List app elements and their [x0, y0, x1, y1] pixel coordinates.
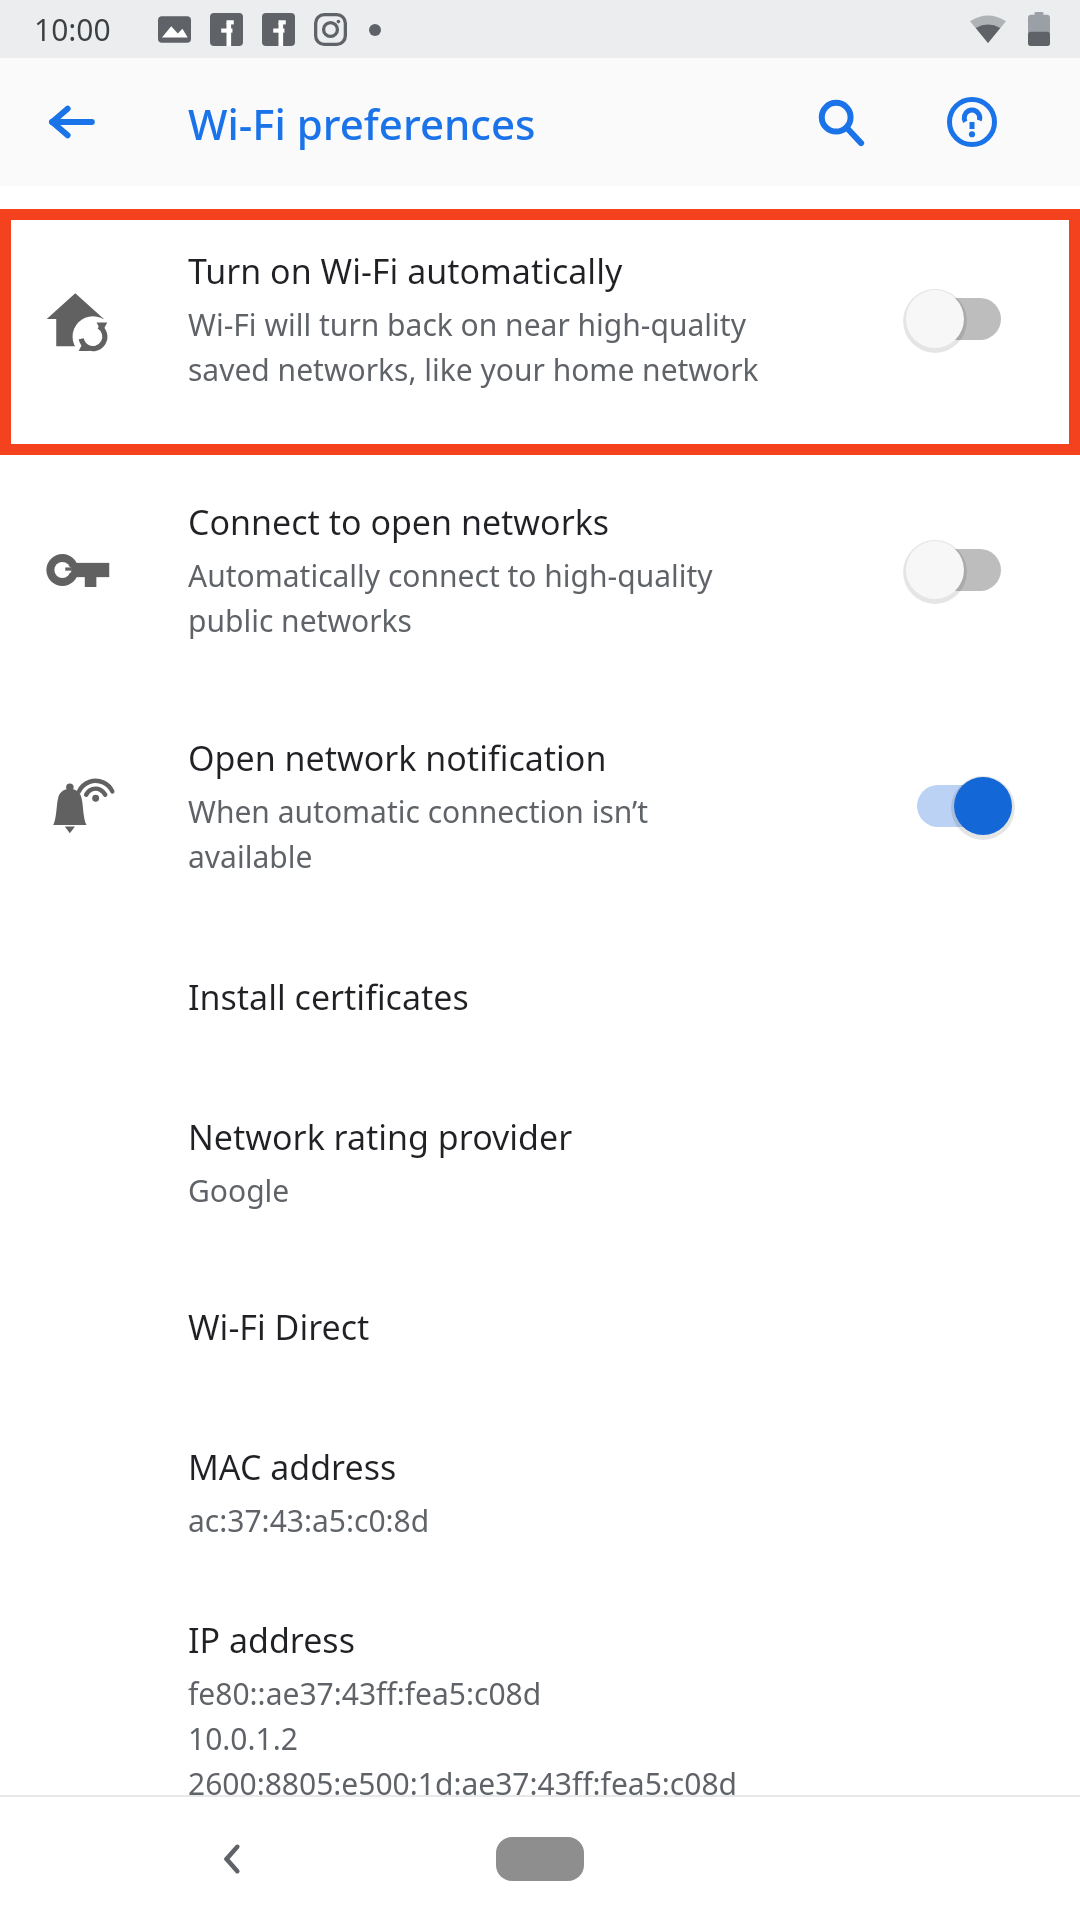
button[interactable]: Turn on Wi-Fi automatically off [905, 271, 1045, 367]
button[interactable]: Home [470, 1819, 610, 1899]
staticText: Automatically connect to high-quality pu… [188, 555, 713, 641]
button[interactable]: Network rating provider [0, 1068, 1080, 1256]
staticText: Turn on Wi-Fi automatically [188, 248, 623, 294]
button[interactable]: IP address [0, 1586, 1080, 1795]
button[interactable]: Wi-Fi Direct [0, 1256, 1080, 1398]
button[interactable]: Help [928, 78, 1016, 166]
button[interactable]: Open network notification on [905, 758, 1045, 854]
staticText: Wi-Fi preferences [188, 95, 536, 152]
button[interactable]: Install certificates [0, 926, 1080, 1068]
staticText: MAC address [188, 1444, 397, 1490]
staticText: Google [188, 1170, 290, 1211]
staticText: Network rating provider [188, 1114, 573, 1160]
button[interactable]: Turn on Wi-Fi automatically [0, 186, 1080, 452]
button[interactable]: Back [190, 1816, 276, 1902]
button[interactable]: Open network notification [0, 688, 1080, 924]
staticText: fe80::ae37:43ff:fea5:c08d 10.0.1.2 2600:… [188, 1673, 737, 1804]
button[interactable]: Connect to open networks off [905, 522, 1045, 618]
staticText: 10:00 [34, 9, 111, 50]
staticText: Wi-Fi Direct [188, 1304, 370, 1350]
staticText: Open network notification [188, 735, 607, 781]
button[interactable]: Search [796, 78, 884, 166]
button[interactable]: MAC address [0, 1398, 1080, 1586]
staticText: IP address [188, 1617, 355, 1663]
staticText: Wi-Fi will turn back on near high-qualit… [188, 304, 759, 390]
button[interactable]: Connect to open networks [0, 452, 1080, 688]
staticText: When automatic connection isn’t availabl… [188, 791, 649, 877]
button[interactable]: Back [28, 78, 116, 166]
staticText: ac:37:43:a5:c0:8d [188, 1500, 430, 1541]
staticText: Connect to open networks [188, 499, 610, 545]
staticText: Install certificates [188, 974, 469, 1020]
